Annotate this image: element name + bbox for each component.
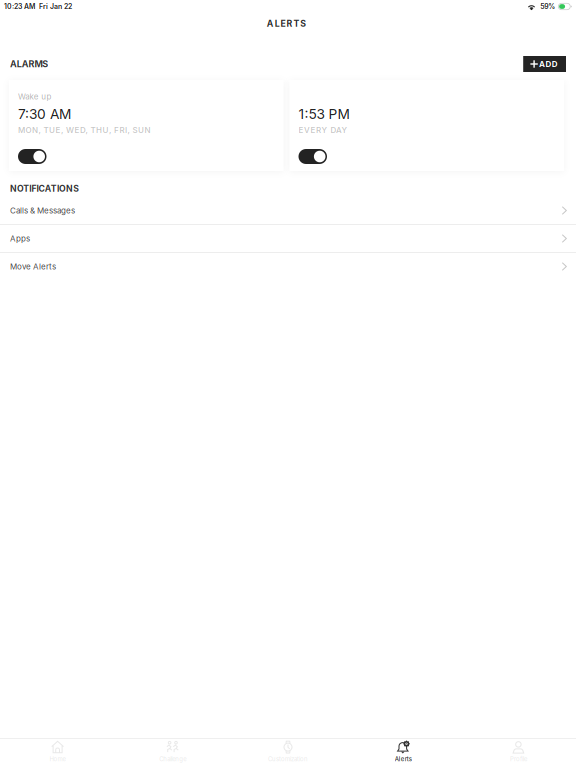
staticText: NOTIFICATIONS [10, 183, 81, 194]
button[interactable]: Wake up [9, 80, 283, 171]
staticText: Apps [10, 234, 30, 243]
staticText: 7:30 AM [18, 106, 71, 122]
staticText: Alerts [395, 755, 412, 763]
staticText: Profile [510, 755, 527, 763]
staticText: Home [50, 755, 66, 763]
staticText: ALERTS [267, 18, 309, 29]
staticText: Wake up [18, 92, 54, 101]
staticText: ADD [539, 59, 560, 69]
staticText: Calls & Messages [10, 206, 75, 215]
button[interactable]: Move Alerts [0, 253, 576, 281]
button[interactable]: 1:53 PM [289, 80, 564, 171]
staticText: Challenge [159, 755, 186, 763]
button[interactable]: Home [0, 738, 115, 768]
staticText: ALARMS [10, 58, 50, 69]
staticText: 59% [540, 2, 555, 11]
staticText: Customization [268, 755, 308, 763]
staticText: EVERY DAY [298, 125, 350, 135]
button[interactable]: Customization [230, 738, 346, 768]
button[interactable]: Apps [0, 225, 576, 253]
button[interactable]: Toggle alarm [298, 149, 327, 164]
button[interactable]: Challenge [115, 738, 230, 768]
button[interactable]: Profile [461, 738, 576, 768]
staticText: Fri Jan 22 [39, 2, 72, 11]
staticText: Move Alerts [10, 262, 56, 271]
button[interactable]: ADD [523, 56, 566, 72]
staticText: 10:23 AM [4, 2, 35, 11]
button[interactable]: Calls & Messages [0, 197, 576, 225]
button[interactable]: Toggle alarm [18, 149, 46, 164]
button[interactable]: Alerts [346, 738, 461, 768]
staticText: 1:53 PM [298, 106, 349, 122]
staticText: MON, TUE, WED, THU, FRI, SUN [18, 125, 153, 135]
